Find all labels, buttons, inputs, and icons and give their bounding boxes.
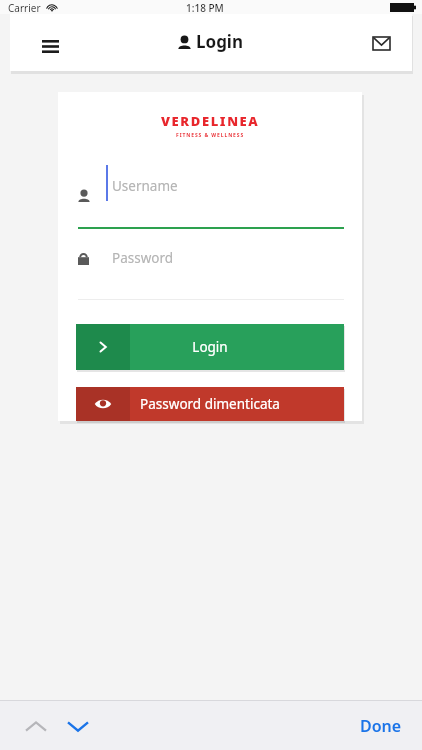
button[interactable]: Forgot password <box>76 387 344 421</box>
button[interactable]: Password <box>58 249 362 299</box>
button[interactable]: Messages <box>361 23 401 63</box>
other: Forgot password <box>76 387 130 421</box>
button[interactable]: Login <box>178 30 244 53</box>
staticText: Password dimenticata <box>140 395 280 413</box>
staticText: Done <box>360 715 402 737</box>
staticText: Login <box>192 338 228 356</box>
button[interactable]: Done <box>348 705 414 747</box>
staticText: Password <box>112 249 174 267</box>
button[interactable]: Login <box>76 324 344 370</box>
button[interactable]: Previous field <box>14 704 58 748</box>
button[interactable]: Menu <box>30 26 70 66</box>
staticText: FITNESS & WELLNESS <box>176 132 245 139</box>
staticText: 1:18 PM <box>186 1 224 15</box>
button[interactable]: Next field <box>56 704 100 748</box>
button[interactable]: Username <box>58 177 362 227</box>
staticText: Login <box>196 30 244 53</box>
other: Login <box>76 324 130 370</box>
staticText: Carrier <box>8 1 41 15</box>
staticText: Username <box>112 177 178 195</box>
staticText: VERDELINEA <box>161 112 260 130</box>
